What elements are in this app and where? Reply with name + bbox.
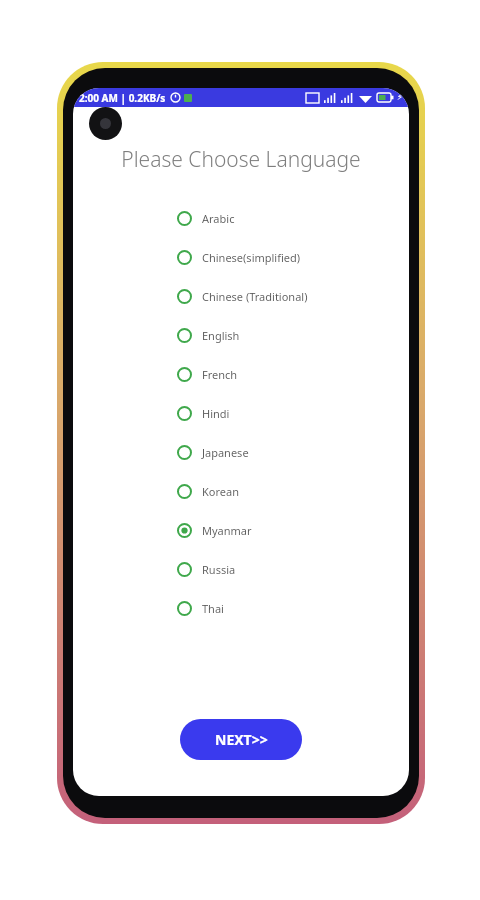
staticText: English bbox=[202, 328, 240, 343]
staticText: Hindi bbox=[202, 406, 230, 421]
button[interactable]: Arabic bbox=[73, 199, 409, 238]
staticText: Korean bbox=[202, 484, 239, 499]
staticText: Chinese(simplified) bbox=[202, 250, 301, 265]
staticText: Please Choose Language bbox=[73, 145, 409, 174]
staticText: Arabic bbox=[202, 211, 235, 226]
staticText: 2:00 AM | 0.2KB/s bbox=[79, 91, 166, 105]
button[interactable]: Chinese(simplified) bbox=[73, 238, 409, 277]
button[interactable]: Thai bbox=[73, 589, 409, 628]
staticText: Russia bbox=[202, 562, 236, 577]
button[interactable]: Chinese (Traditional) bbox=[73, 277, 409, 316]
button[interactable]: Russia bbox=[73, 550, 409, 589]
button[interactable]: French bbox=[73, 355, 409, 394]
button[interactable]: Hindi bbox=[73, 394, 409, 433]
staticText: Japanese bbox=[202, 445, 249, 460]
staticText: ⚡ bbox=[397, 93, 403, 102]
button[interactable]: Korean bbox=[73, 472, 409, 511]
staticText: Chinese (Traditional) bbox=[202, 289, 308, 304]
button[interactable]: Myanmar bbox=[73, 511, 409, 550]
staticText: NEXT>> bbox=[215, 730, 268, 749]
staticText: Myanmar bbox=[202, 523, 252, 538]
button[interactable]: NEXT>> bbox=[180, 719, 302, 760]
button[interactable]: English bbox=[73, 316, 409, 355]
staticText: French bbox=[202, 367, 238, 382]
button[interactable]: Japanese bbox=[73, 433, 409, 472]
staticText: Thai bbox=[202, 601, 224, 616]
